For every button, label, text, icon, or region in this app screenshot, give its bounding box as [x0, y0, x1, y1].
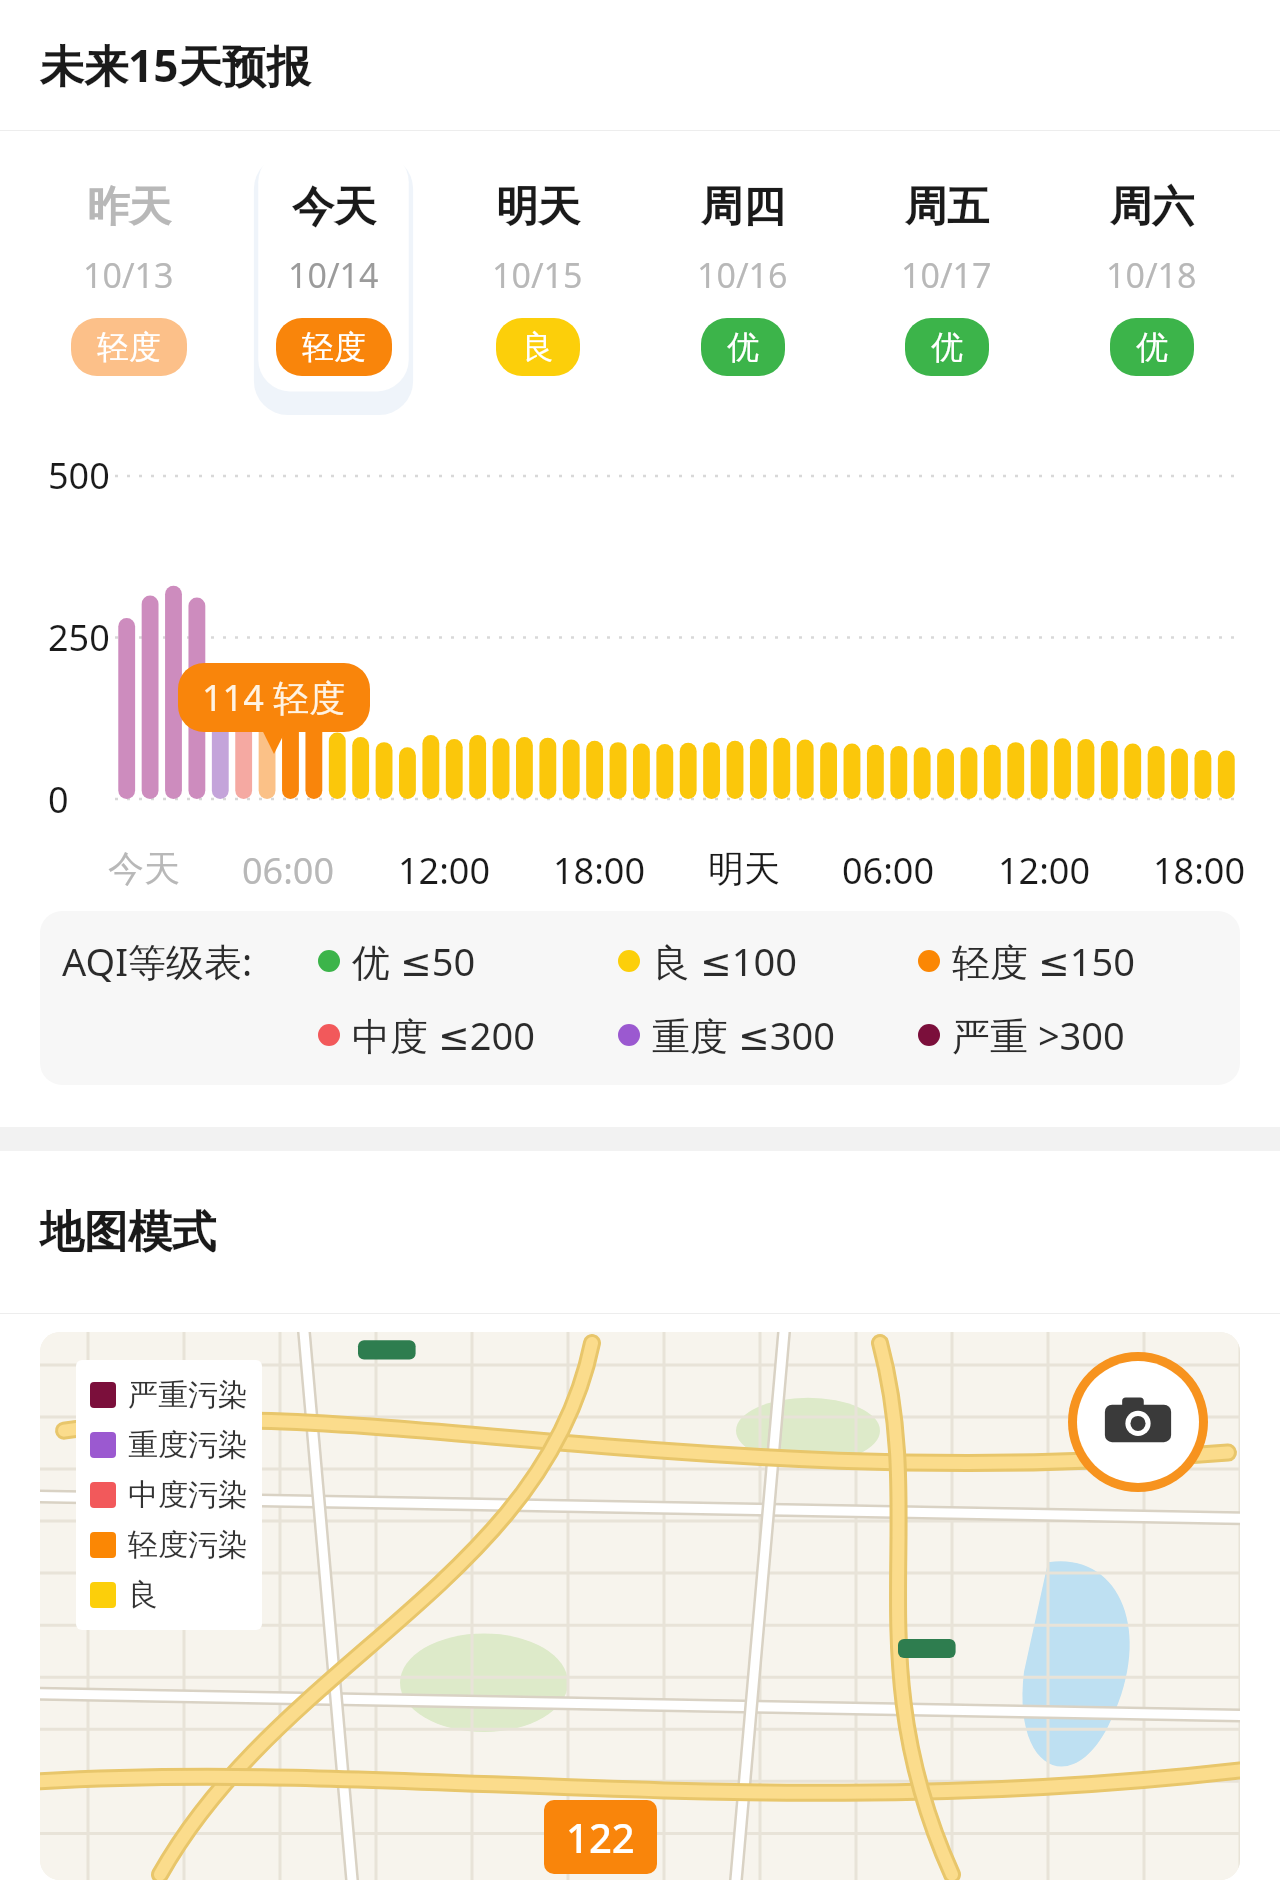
staticText: 重度污染 — [128, 1426, 248, 1464]
staticText: 良 ≤100 — [652, 935, 797, 987]
staticText: 重度 ≤300 — [652, 1009, 835, 1061]
staticText: 10/18 — [1106, 252, 1197, 298]
staticText: 明天 — [496, 181, 580, 234]
button[interactable]: 明天 — [450, 147, 625, 415]
staticText: 优 — [1136, 327, 1168, 367]
staticText: 今天 — [292, 181, 376, 234]
staticText: 114 轻度 — [202, 673, 346, 722]
staticText: 10/13 — [83, 252, 174, 298]
staticText: 18:00 — [1153, 846, 1246, 895]
staticText: 周五 — [905, 181, 989, 234]
staticText: 严重污染 — [128, 1376, 248, 1414]
staticText: 周四 — [701, 181, 785, 234]
staticText: 10/16 — [697, 252, 788, 298]
staticText: 未来15天预报 — [40, 35, 311, 95]
staticText: 0 — [48, 775, 69, 824]
staticText: 18:00 — [553, 846, 646, 895]
staticText: 优 — [727, 327, 759, 367]
staticText: 250 — [48, 613, 110, 662]
staticText: 中度污染 — [128, 1476, 248, 1514]
button[interactable]: 周六 — [1064, 147, 1239, 415]
staticText: 地图模式 — [40, 1205, 216, 1260]
staticText: 明天 — [708, 846, 780, 891]
staticText: 优 — [931, 327, 963, 367]
staticText: 中度 ≤200 — [352, 1009, 535, 1061]
staticText: 轻度 — [302, 327, 366, 367]
staticText: AQI等级表: — [62, 935, 318, 987]
staticText: 轻度污染 — [128, 1526, 248, 1564]
staticText: 500 — [48, 451, 110, 500]
staticText: 12:00 — [398, 846, 491, 895]
button[interactable]: 周四 — [655, 147, 830, 415]
button[interactable]: 拍照 — [1077, 1361, 1199, 1483]
staticText: 10/14 — [288, 252, 379, 298]
staticText: 良 — [128, 1576, 158, 1614]
staticText: 良 — [522, 327, 554, 367]
button[interactable]: 114 轻度 — [178, 663, 370, 754]
staticText: 今天 — [108, 846, 180, 891]
staticText: 轻度 — [97, 327, 161, 367]
staticText: 10/15 — [492, 252, 583, 298]
button[interactable]: 今天 — [246, 147, 421, 415]
staticText: 轻度 ≤150 — [952, 935, 1135, 987]
button[interactable]: 周五 — [859, 147, 1034, 415]
button[interactable]: 122 — [566, 1810, 635, 1864]
button[interactable]: 昨天 — [41, 147, 216, 415]
staticText: 06:00 — [842, 846, 935, 895]
staticText: 06:00 — [242, 846, 335, 895]
staticText: 严重 >300 — [952, 1009, 1125, 1061]
staticText: 10/17 — [901, 252, 992, 298]
staticText: 昨天 — [87, 181, 171, 234]
staticText: 12:00 — [998, 846, 1091, 895]
staticText: 周六 — [1110, 181, 1194, 234]
staticText: 122 — [566, 1810, 635, 1864]
staticText: 优 ≤50 — [352, 935, 476, 987]
